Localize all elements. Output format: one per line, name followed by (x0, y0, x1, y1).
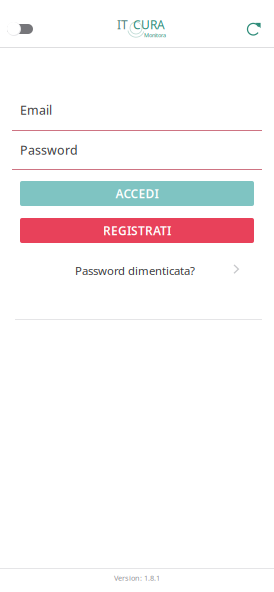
button[interactable]: Refresh (240, 15, 268, 43)
button[interactable]: REGISTRATI (20, 218, 254, 243)
button[interactable]: ACCEDI (20, 181, 254, 206)
staticText: Monitora (144, 31, 166, 39)
staticText: Password dimenticata? (75, 263, 195, 278)
staticText: IT (117, 16, 128, 33)
staticText: REGISTRATI (103, 222, 171, 238)
button[interactable]: Menu (0, 15, 41, 43)
staticText: ACCEDI (115, 185, 158, 201)
staticText: CURA (133, 16, 165, 33)
staticText: Version: 1.8.1 (114, 573, 160, 583)
staticText: Email (20, 102, 52, 118)
staticText: Password (20, 142, 78, 158)
button[interactable]: Password dimenticata? (10, 256, 264, 286)
